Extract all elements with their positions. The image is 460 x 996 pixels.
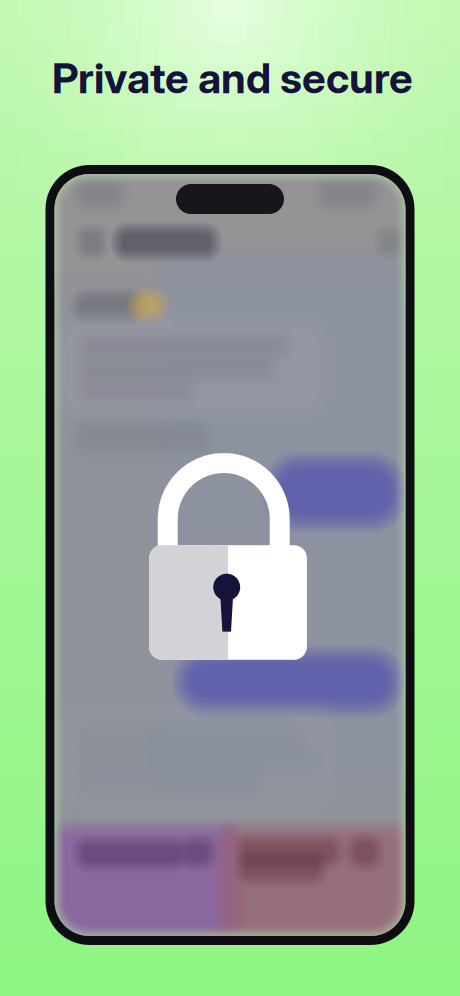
staticText: Private and secure (52, 53, 413, 103)
